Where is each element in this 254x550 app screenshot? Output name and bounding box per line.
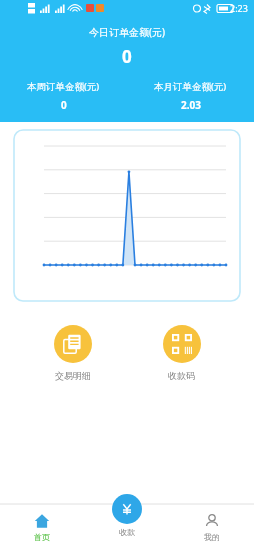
staticText: 本周订单金额(元) — [27, 80, 100, 93]
staticText: 0 — [122, 45, 132, 68]
staticText: 今日订单金额(元) — [89, 25, 165, 39]
staticText: 首页 — [34, 532, 50, 542]
button[interactable]: 收款 — [112, 494, 142, 537]
staticText: 0 — [61, 98, 67, 112]
staticText: 交易明细 — [55, 370, 91, 381]
button[interactable]: 我的 — [169, 504, 254, 550]
button[interactable]: 首页 — [0, 504, 84, 550]
staticText: 我的 — [204, 532, 220, 542]
staticText: 2.03 — [181, 98, 201, 112]
button[interactable]: 交易明细 — [18, 321, 127, 385]
staticText: 本月订单金额(元) — [154, 80, 227, 93]
staticText: 收款码 — [168, 370, 195, 381]
button[interactable]: 收款码 — [127, 321, 236, 385]
staticText: 收款 — [119, 527, 135, 537]
staticText: 2:23 — [230, 2, 248, 14]
